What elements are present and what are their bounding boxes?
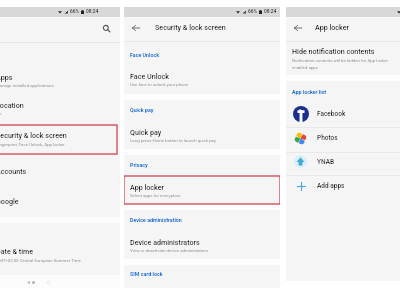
button[interactable]: Google (0, 194, 120, 220)
staticText: Face Unlock (130, 52, 160, 58)
staticText: Manage installed applications (0, 83, 54, 88)
button[interactable]: YNAB (286, 150, 400, 174)
staticText: Hide notification contents (292, 47, 375, 55)
button[interactable]: Date & time (0, 244, 120, 272)
button[interactable]: Security & lock screen (0, 128, 120, 158)
staticText: Notification contents will be hidden for… (292, 58, 389, 63)
button[interactable]: Back (23, 277, 33, 287)
staticText: View or deactivate device administrators (130, 248, 209, 253)
button[interactable]: App locker (124, 180, 280, 208)
staticText: Device administration (130, 217, 182, 223)
staticText: YNAB (317, 158, 335, 166)
button[interactable]: Quick pay (124, 125, 280, 153)
button[interactable]: Back (291, 21, 305, 35)
staticText: Security & lock screen (155, 23, 226, 31)
button[interactable]: Accounts (0, 164, 120, 190)
staticText: App locker (315, 23, 350, 31)
button[interactable]: Location (0, 98, 120, 125)
staticText: 66% (248, 9, 257, 15)
staticText: 08:24 (264, 9, 277, 15)
button[interactable]: Face Unlock (124, 69, 280, 97)
staticText: Device administrators (130, 238, 200, 246)
staticText: Date & time (0, 247, 34, 255)
staticText: Privacy (130, 162, 148, 168)
staticText: enabled apps (292, 65, 318, 70)
staticText: Long press Home button to launch quick p… (130, 138, 217, 143)
button[interactable]: Recents (43, 277, 53, 287)
staticText: Google (0, 197, 19, 205)
button[interactable]: Hide notification contents (286, 46, 400, 78)
staticText: Fingerprint, Face Unlock, App locker (0, 142, 65, 147)
staticText: 08:24 (86, 9, 99, 15)
staticText: On (0, 111, 2, 116)
button[interactable]: Search (100, 22, 113, 35)
button[interactable]: Add apps (286, 174, 400, 198)
staticText: Add apps (317, 182, 345, 190)
staticText: Use face to unlock your phone (130, 82, 189, 87)
button[interactable]: Apps (0, 70, 120, 96)
staticText: Quick pay (130, 107, 154, 113)
staticText: App locker (130, 183, 165, 191)
staticText: SIM card lock (130, 271, 163, 277)
staticText: Security & lock screen (0, 131, 67, 139)
staticText: Facebook (317, 110, 346, 118)
staticText: 66% (70, 9, 79, 15)
button[interactable]: Facebook (286, 102, 400, 126)
staticText: Quick pay (130, 128, 162, 136)
staticText: GMT+02:00 Central European Summer Time (0, 258, 81, 263)
button[interactable]: Home (28, 277, 38, 287)
staticText: App locker list (292, 89, 327, 95)
staticText: Select apps for encryption (130, 193, 181, 198)
button[interactable]: Back (129, 21, 143, 35)
staticText: Face Unlock (130, 72, 169, 80)
staticText: Photos (317, 134, 338, 142)
staticText: Apps (0, 73, 13, 81)
button[interactable]: Photos (286, 126, 400, 150)
button[interactable]: Device administrators (124, 235, 280, 263)
staticText: Location (0, 101, 24, 109)
staticText: Accounts (0, 167, 27, 175)
